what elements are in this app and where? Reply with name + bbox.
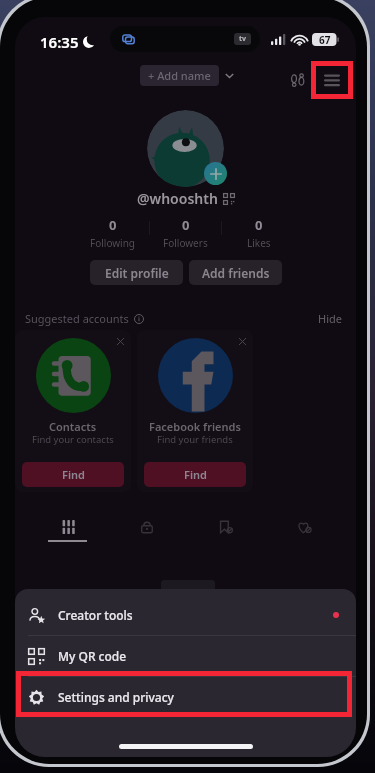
staticText: 0	[255, 216, 263, 234]
staticText: Add friends	[202, 265, 270, 281]
staticText: 67	[319, 33, 331, 46]
staticText: Hide	[318, 311, 342, 326]
button[interactable]: Profile photo	[147, 110, 224, 187]
staticText: My QR code	[58, 648, 127, 664]
staticText: 0	[182, 216, 190, 234]
staticText: 0	[109, 216, 117, 234]
staticText: 16:35	[40, 32, 79, 52]
button[interactable]: Find	[22, 462, 124, 487]
staticText: Creator tools	[58, 607, 133, 623]
button[interactable]: Contacts	[15, 330, 131, 492]
staticText: @whooshth	[137, 189, 218, 208]
button[interactable]: 0	[76, 216, 149, 250]
button[interactable]: Dismiss	[231, 330, 253, 352]
button[interactable]: Tab	[186, 509, 265, 549]
button[interactable]: Settings and privacy	[15, 677, 356, 717]
staticText: Likes	[247, 236, 271, 250]
staticText: Followers	[163, 236, 208, 250]
button[interactable]: Tab	[265, 509, 344, 549]
button[interactable]: Hide	[314, 308, 346, 329]
button[interactable]: Dismiss	[109, 330, 131, 352]
staticText: + Add name	[148, 68, 211, 83]
button[interactable]: 0	[222, 216, 295, 250]
staticText: Settings and privacy	[58, 689, 174, 705]
button[interactable]: + Add name	[140, 65, 235, 86]
staticText: Edit profile	[105, 265, 169, 281]
staticText: Contacts	[49, 419, 97, 434]
button[interactable]: Menu	[311, 61, 353, 99]
button[interactable]: Creator tools	[15, 595, 356, 635]
staticText: Suggested accounts	[25, 311, 129, 326]
button[interactable]: Tab	[28, 509, 107, 549]
button[interactable]: My QR code	[15, 636, 356, 676]
staticText: Find your friends	[157, 433, 233, 446]
button[interactable]: Facebook friends	[137, 330, 253, 492]
button[interactable]: Edit profile	[90, 260, 183, 285]
button[interactable]: Add	[204, 162, 227, 185]
button[interactable]: 0	[149, 216, 222, 250]
staticText: Find your contacts	[32, 433, 114, 446]
staticText: tv	[239, 34, 247, 44]
button[interactable]: Add friends	[189, 260, 282, 285]
staticText: Following	[90, 236, 136, 250]
button[interactable]: Tab	[107, 509, 186, 549]
staticText: Find	[184, 467, 207, 482]
button[interactable]: Activity history	[285, 66, 313, 94]
button[interactable]: Find	[144, 462, 246, 487]
staticText: Facebook friends	[149, 419, 241, 434]
staticText: Find	[62, 467, 85, 482]
